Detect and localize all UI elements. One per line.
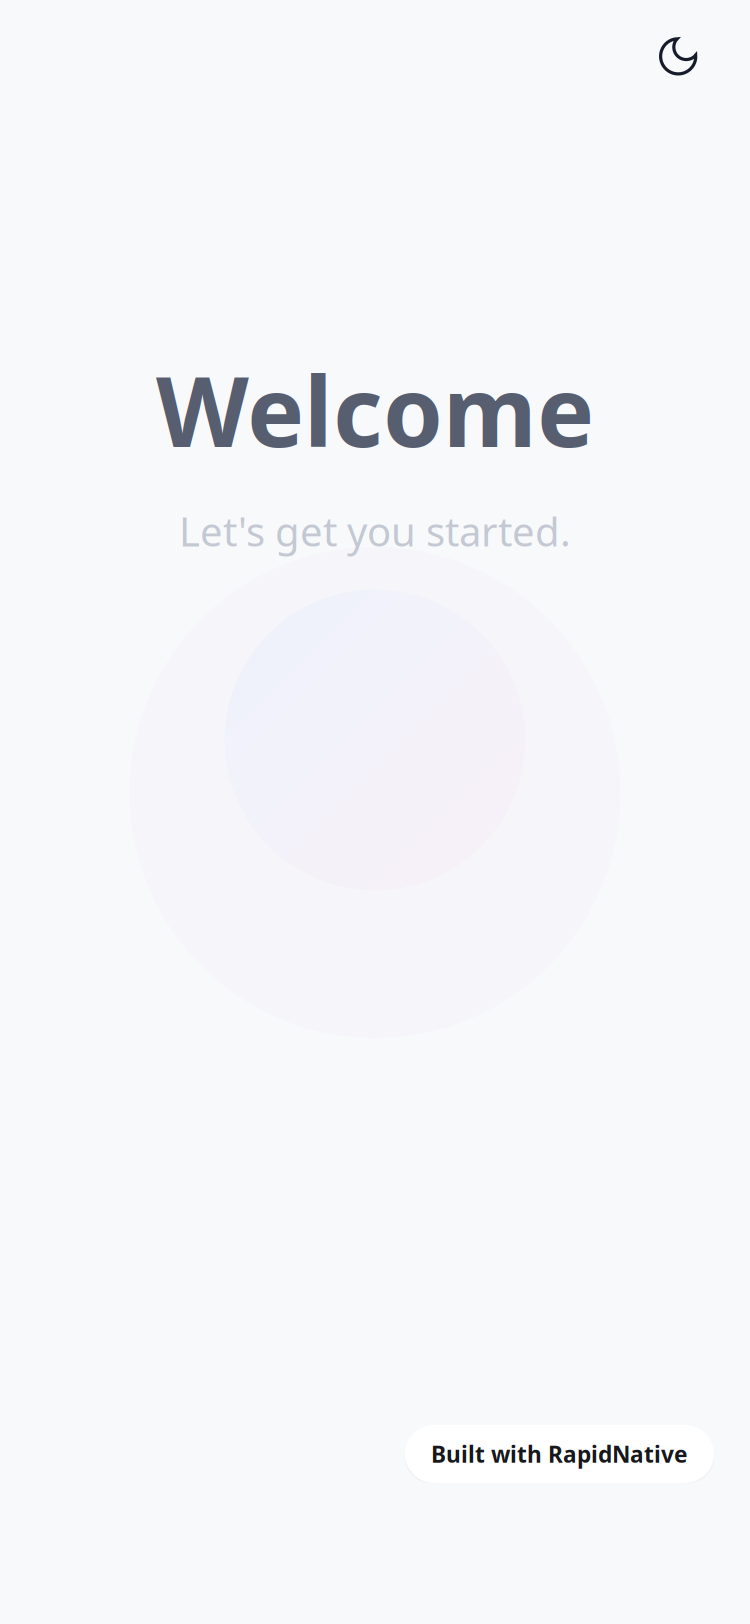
button[interactable]: Toggle dark mode <box>650 28 706 84</box>
button[interactable]: Built with RapidNative <box>405 1425 714 1483</box>
staticText: Welcome <box>156 346 594 473</box>
staticText: Built with RapidNative <box>431 1439 688 1469</box>
staticText: Let's get you started. <box>179 504 571 558</box>
